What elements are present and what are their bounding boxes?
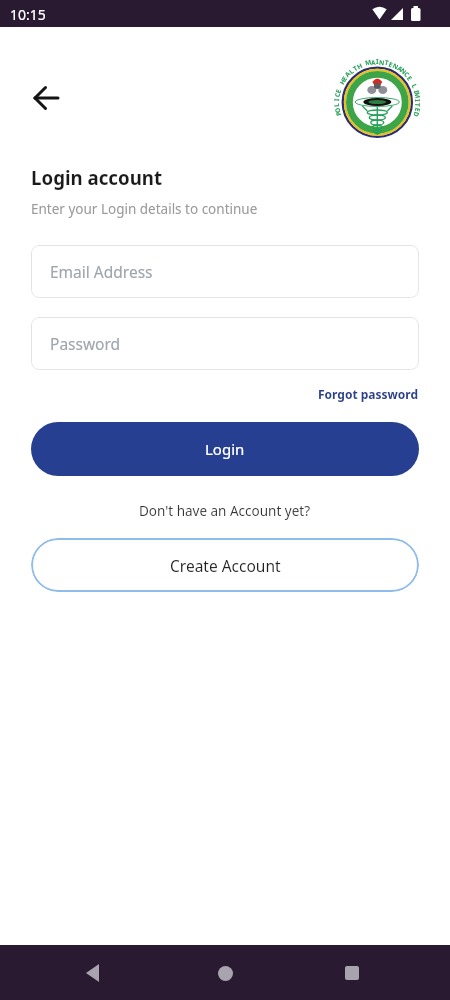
staticText: L (332, 103, 341, 107)
staticText: E (405, 74, 414, 83)
staticText: O (332, 106, 342, 114)
staticText: H (337, 77, 348, 86)
staticText: E (413, 107, 422, 113)
staticText: E (340, 74, 349, 83)
staticText: N (391, 61, 400, 72)
staticText: I (412, 89, 421, 94)
staticText: T (384, 58, 390, 67)
button[interactable] (207, 955, 243, 991)
staticText: N (398, 66, 409, 77)
staticText: D (411, 111, 421, 118)
button[interactable]: Password (31, 317, 419, 370)
staticText: C (402, 70, 412, 80)
staticText: I (413, 99, 422, 102)
staticText: C (333, 91, 342, 98)
staticText (336, 83, 345, 89)
staticText: M (364, 57, 373, 68)
staticText: Don't have an Account yet? (139, 502, 311, 520)
staticText: Create Account (170, 555, 281, 576)
button[interactable] (75, 955, 111, 991)
button[interactable] (334, 955, 370, 991)
staticText (361, 60, 366, 69)
staticText: Login account (31, 165, 163, 190)
staticText: P (333, 110, 343, 117)
staticText: H (355, 61, 364, 71)
staticText: I (332, 98, 341, 101)
staticText: E (334, 88, 343, 94)
staticText: M (413, 91, 423, 100)
staticText: A (343, 69, 353, 79)
button[interactable] (28, 80, 64, 116)
staticText: Login (205, 439, 245, 459)
staticText: L (347, 67, 356, 76)
button[interactable]: Create Account (31, 538, 419, 592)
staticText: Enter your Login details to continue (31, 200, 258, 218)
staticText (408, 79, 417, 85)
staticText: E (387, 60, 394, 69)
staticText: Forgot password (318, 386, 419, 402)
button[interactable]: Forgot password (318, 386, 419, 402)
staticText: T (351, 64, 359, 73)
staticText: Email Address (50, 261, 153, 282)
staticText: A (370, 58, 376, 67)
staticText: A (396, 64, 405, 74)
button[interactable]: Login (31, 422, 419, 476)
staticText: L (410, 83, 419, 90)
staticText: 10:15 (10, 5, 46, 24)
staticText: I (376, 57, 379, 66)
staticText: T (413, 103, 422, 107)
staticText: N (378, 58, 385, 67)
staticText: Password (50, 333, 121, 354)
button[interactable]: Email Address (31, 245, 419, 298)
